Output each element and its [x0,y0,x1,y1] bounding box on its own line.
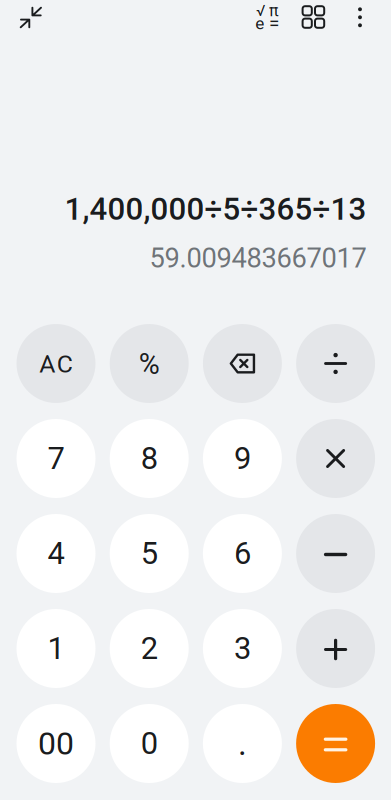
staticText: % [139,347,160,381]
staticText: π [269,1,279,20]
staticText: 4 [47,535,64,572]
button[interactable]: 5 [110,514,189,593]
button[interactable]: Keypad layout [293,0,334,38]
button[interactable]: Divide [296,324,375,403]
button[interactable]: 6 [203,514,282,593]
staticText: 0 [141,725,158,762]
button[interactable]: . [203,704,282,783]
button[interactable]: More options [340,0,380,39]
staticText: = [269,12,279,34]
staticText: 3 [234,630,251,667]
staticText: 6 [234,535,251,572]
staticText: 1 [47,630,64,667]
staticText: 2 [141,630,158,667]
button[interactable]: 2 [110,609,189,688]
button[interactable]: Minus [296,514,375,593]
button[interactable]: 8 [110,419,189,498]
staticText: e [255,13,264,33]
button[interactable]: 7 [16,419,95,498]
staticText: 00 [38,725,74,762]
staticText: √ [256,2,265,20]
button[interactable]: AC [16,324,95,403]
button[interactable]: 00 [16,704,95,783]
button[interactable]: 0 [110,704,189,783]
button[interactable]: 1 [16,609,95,688]
staticText: . [238,724,247,763]
staticText: 5 [141,535,158,572]
button[interactable]: Equals [296,704,375,783]
button[interactable]: Backspace [203,324,282,403]
staticText: 9 [234,440,251,477]
button[interactable]: 3 [203,609,282,688]
staticText: AC [39,350,73,379]
staticText: 1,400,000÷5÷365÷13 [64,191,366,227]
button[interactable]: % [110,324,189,403]
button[interactable]: Exit full screen [10,0,52,38]
button[interactable]: Scientific calculator [246,0,289,39]
button[interactable]: 9 [203,419,282,498]
staticText: 7 [47,440,64,477]
staticText: 8 [141,440,158,477]
button[interactable]: Multiply [296,419,375,498]
button[interactable]: 4 [16,514,95,593]
staticText: 59.009483667017 [149,242,366,274]
button[interactable]: Plus [296,609,375,688]
